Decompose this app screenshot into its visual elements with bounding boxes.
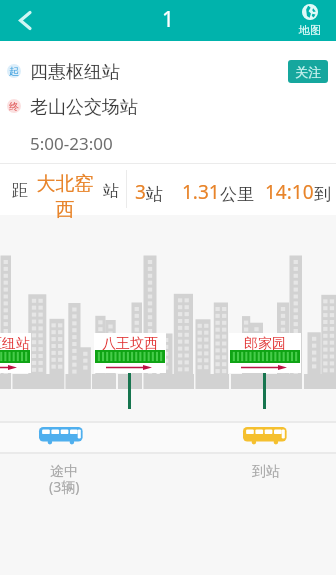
staticText: 四惠枢纽站: [30, 61, 120, 84]
staticText: 到站: [252, 463, 280, 481]
button[interactable]: 途中: [38, 463, 90, 500]
staticText: 途中: [50, 463, 78, 481]
staticText: 关注: [295, 64, 321, 80]
staticText: 站: [103, 181, 119, 201]
staticText: 公里: [220, 184, 254, 205]
button[interactable]: Bus arriving: [243, 427, 287, 445]
staticText: 四惠枢纽站: [0, 335, 30, 353]
staticText: 老山公交场站: [30, 96, 138, 119]
button[interactable]: 到站: [240, 463, 292, 481]
staticText: 到: [314, 184, 331, 205]
button[interactable]: Back: [0, 0, 49, 41]
staticText: 郎家园: [244, 335, 286, 353]
staticText: 1.31: [182, 179, 220, 205]
staticText: 终: [9, 100, 19, 113]
staticText: 站: [146, 184, 163, 205]
staticText: 八王坟西: [102, 335, 158, 353]
button[interactable]: 关注: [288, 60, 328, 83]
staticText: 距: [12, 181, 28, 201]
button[interactable]: Buses en route: [39, 427, 83, 445]
staticText: 14:10: [265, 179, 314, 205]
staticText: 大北窑西: [36, 172, 94, 222]
staticText: 1: [162, 5, 175, 34]
staticText: 5:00-23:00: [30, 132, 113, 155]
staticText: 起: [9, 65, 19, 78]
staticText: (3辆): [49, 477, 80, 496]
staticText: 地图: [299, 23, 321, 37]
staticText: 3: [135, 179, 146, 205]
button[interactable]: Map: [284, 0, 336, 41]
